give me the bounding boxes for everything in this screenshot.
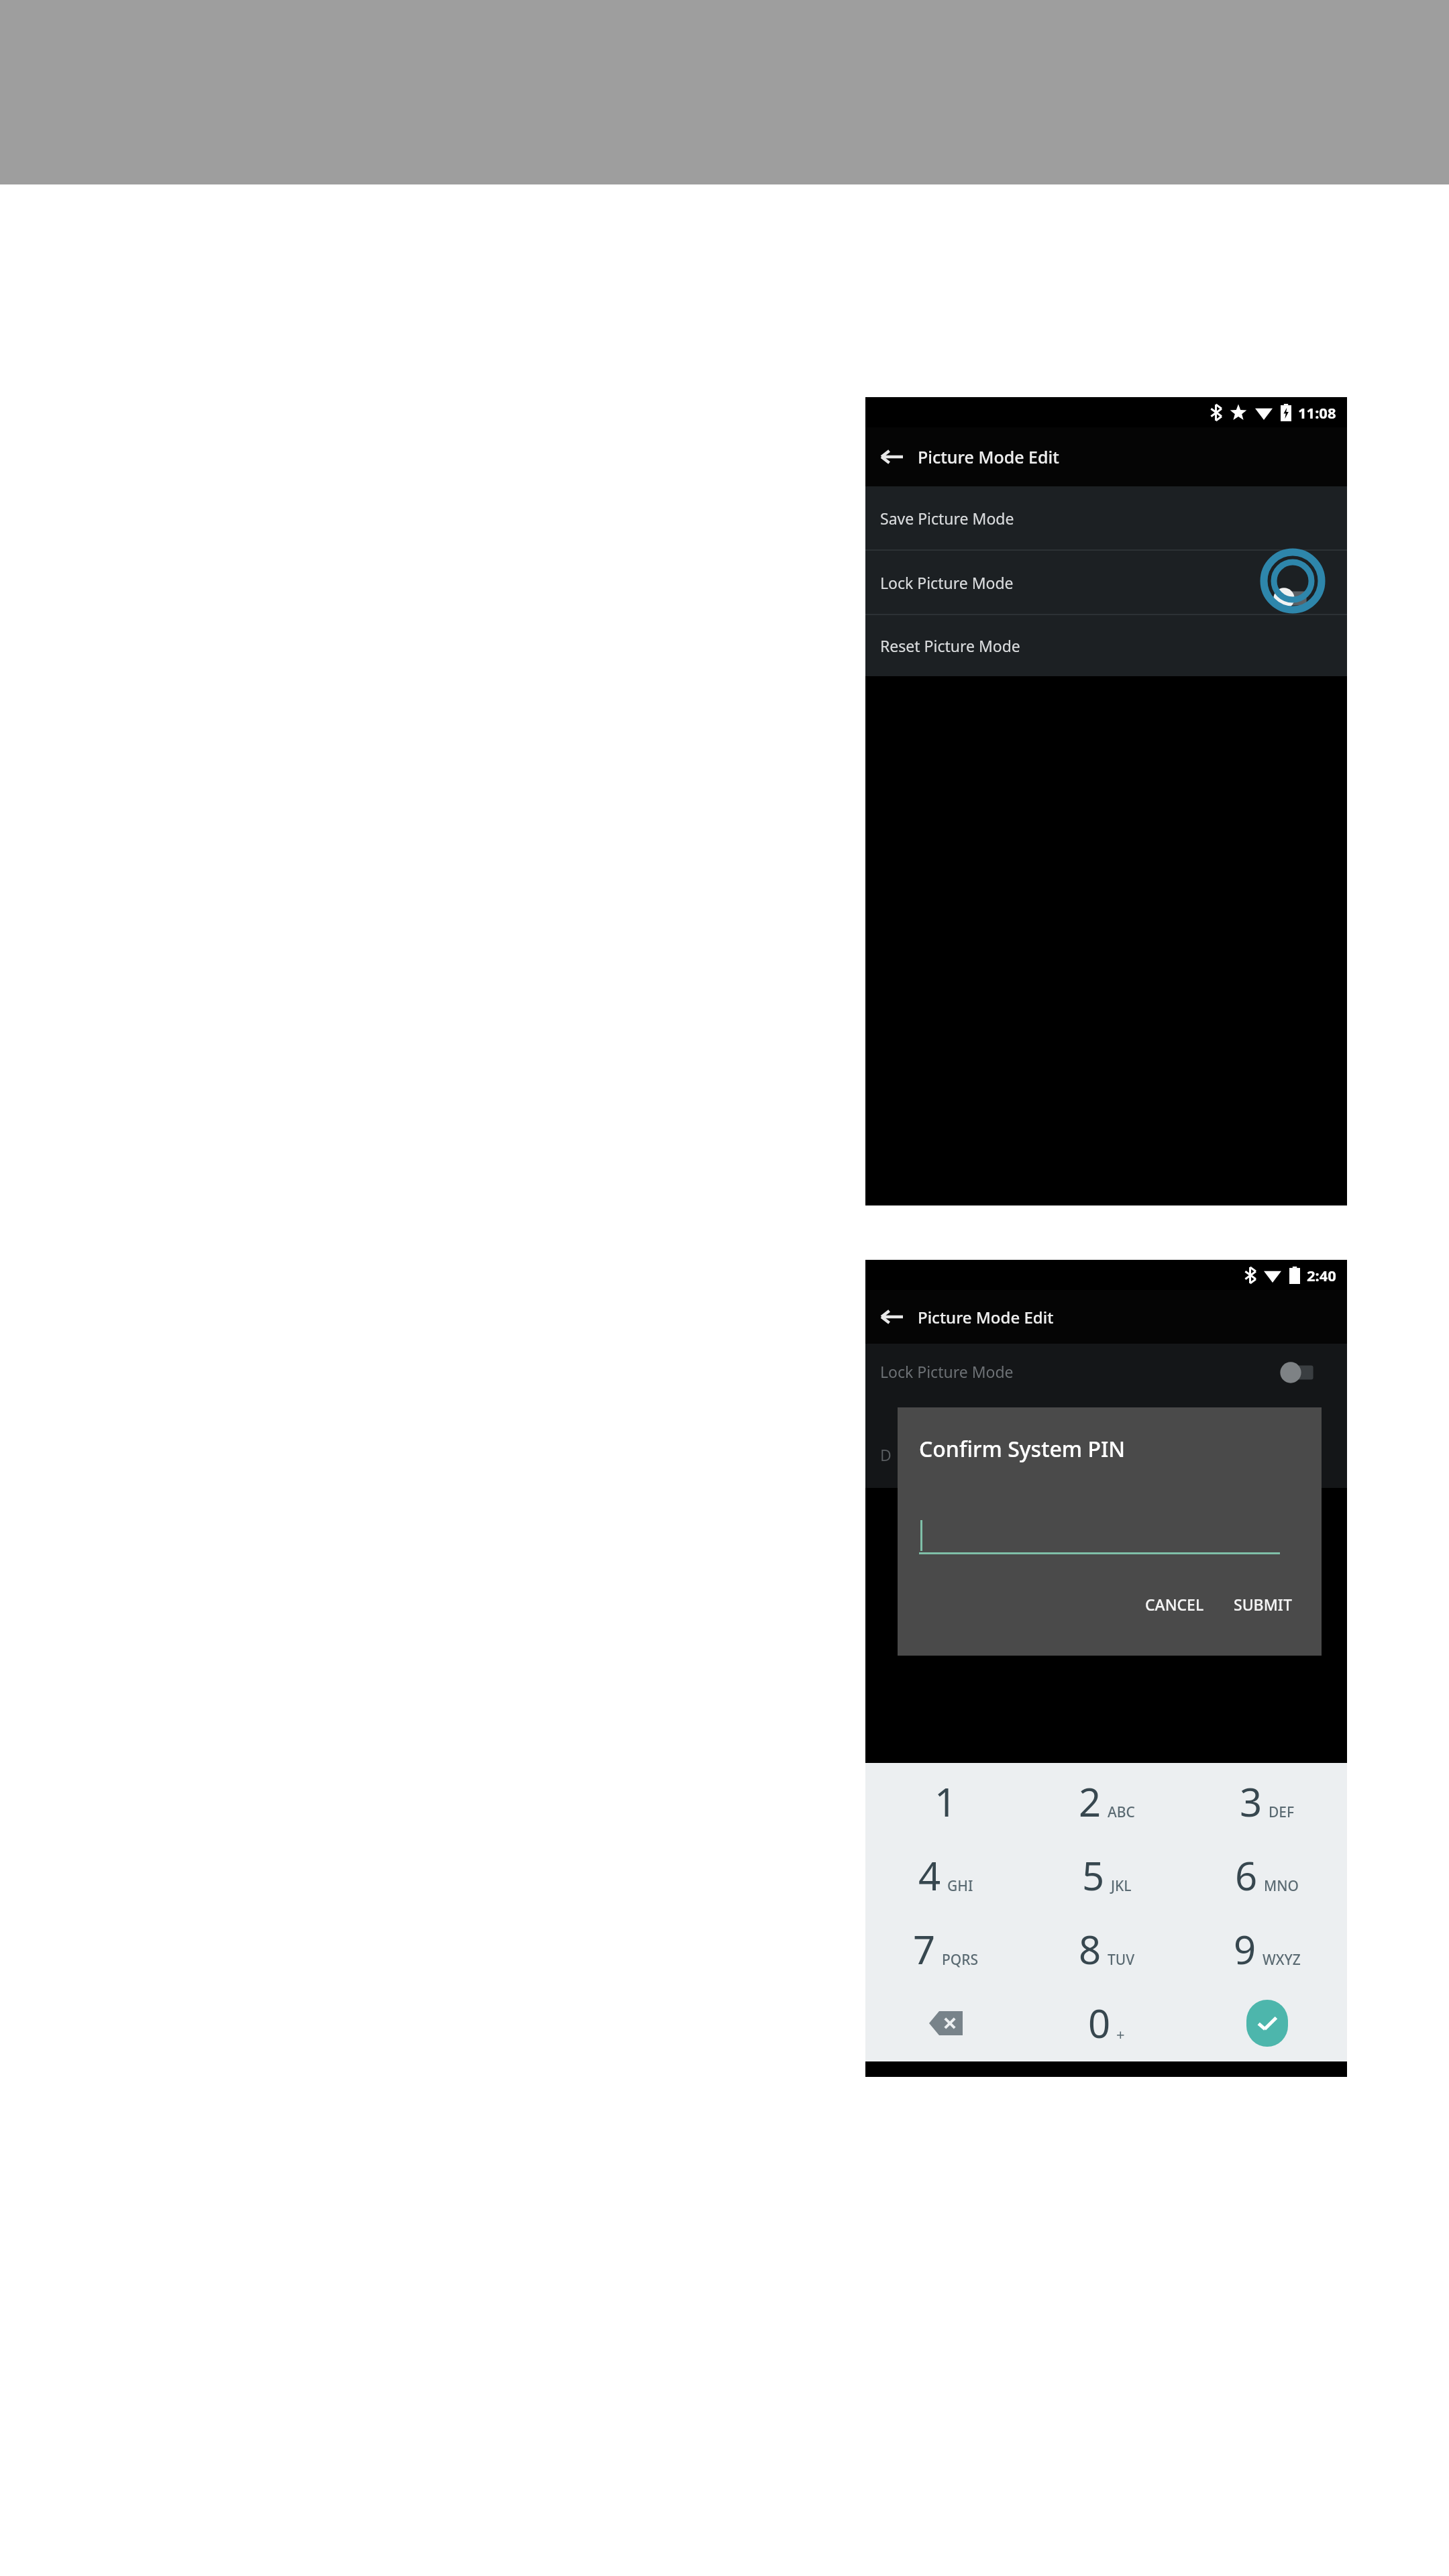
staticText: PQRS xyxy=(942,1950,979,1970)
staticText: SUBMIT xyxy=(1234,1594,1292,1615)
staticText: 4 xyxy=(918,1849,941,1902)
staticText: 9 xyxy=(1234,1923,1256,1976)
button[interactable]: 6 xyxy=(1187,1840,1347,1911)
staticText: 8 xyxy=(1079,1923,1102,1976)
staticText: D xyxy=(880,1444,892,1465)
staticText: Picture Mode Edit xyxy=(918,1306,1054,1328)
staticText: TUV xyxy=(1108,1950,1135,1970)
button[interactable]: 4 xyxy=(865,1840,1026,1911)
button[interactable]: 7 xyxy=(865,1914,1026,1984)
staticText: 2 xyxy=(1079,1775,1102,1828)
staticText: + xyxy=(1116,2024,1125,2044)
staticText: CANCEL xyxy=(1145,1594,1204,1615)
button[interactable]: Back xyxy=(865,1290,918,1344)
staticText: WXYZ xyxy=(1263,1950,1301,1970)
button[interactable]: 5 xyxy=(1026,1840,1187,1911)
staticText: DEF xyxy=(1269,1803,1295,1822)
button[interactable]: CANCEL xyxy=(1140,1590,1210,1619)
staticText: Lock Picture Mode xyxy=(880,1361,1014,1382)
staticText: 1 xyxy=(934,1775,957,1828)
button[interactable]: Save Picture Mode xyxy=(865,486,1347,549)
button[interactable]: SUBMIT xyxy=(1228,1590,1297,1619)
staticText: Reset Picture Mode xyxy=(880,635,1020,656)
staticText: 6 xyxy=(1235,1849,1258,1902)
staticText: 0 xyxy=(1088,1996,1111,2049)
staticText: Save Picture Mode xyxy=(880,508,1014,529)
button[interactable]: Lock Picture Mode xyxy=(865,551,1347,614)
button[interactable]: 0 xyxy=(1026,1988,1187,2058)
staticText: 7 xyxy=(913,1923,936,1976)
staticText: 5 xyxy=(1082,1849,1105,1902)
button[interactable]: 3 xyxy=(1187,1766,1347,1837)
staticText: Lock Picture Mode xyxy=(880,572,1014,593)
button[interactable]: Backspace xyxy=(865,1988,1026,2058)
staticText: GHI xyxy=(947,1876,973,1896)
button[interactable]: 9 xyxy=(1187,1914,1347,1984)
staticText: JKL xyxy=(1111,1876,1132,1896)
button[interactable]: 1 xyxy=(865,1766,1026,1837)
button[interactable]: Back xyxy=(865,427,918,486)
button[interactable]: 8 xyxy=(1026,1914,1187,1984)
staticText: MNO xyxy=(1264,1876,1299,1896)
staticText: 3 xyxy=(1240,1775,1263,1828)
staticText: 11:08 xyxy=(1298,402,1336,423)
staticText: 2:40 xyxy=(1307,1265,1336,1285)
staticText: Picture Mode Edit xyxy=(918,445,1059,468)
button[interactable]: Reset Picture Mode xyxy=(865,615,1347,676)
button[interactable]: Lock Picture Mode toggle xyxy=(1260,566,1324,631)
staticText: Confirm System PIN xyxy=(919,1434,1126,1464)
button[interactable]: Confirm xyxy=(1187,1988,1347,2058)
staticText: ABC xyxy=(1108,1803,1135,1822)
button[interactable]: 2 xyxy=(1026,1766,1187,1837)
